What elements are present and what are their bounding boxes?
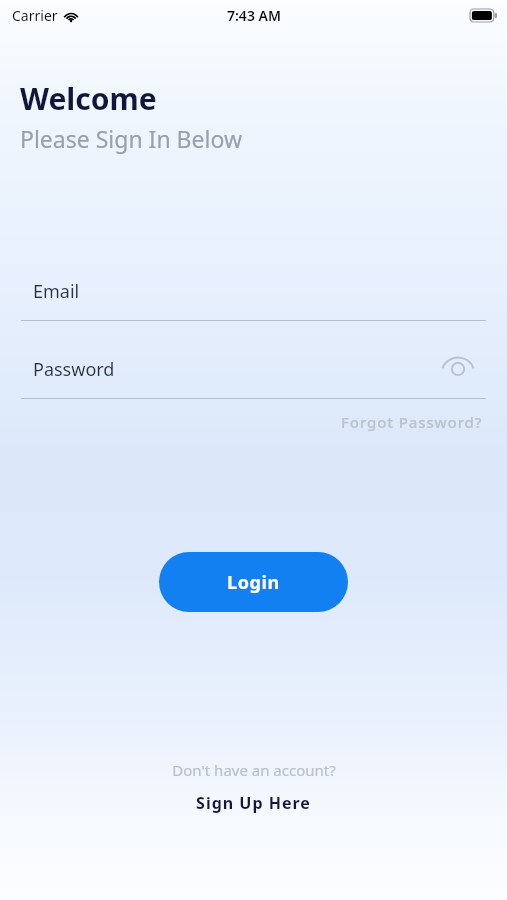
button[interactable]: Show password	[432, 340, 484, 392]
staticText: 7:43 AM	[227, 6, 281, 25]
button[interactable]: Forgot Password?	[339, 408, 485, 436]
button[interactable]: Login	[159, 552, 348, 612]
staticText: Sign Up Here	[196, 792, 311, 814]
button[interactable]: Sign Up Here	[190, 790, 317, 816]
staticText: Email	[33, 279, 80, 304]
staticText: Login	[227, 570, 280, 595]
staticText: Welcome	[20, 78, 157, 119]
staticText: Don't have an account?	[172, 760, 336, 780]
button[interactable]: Password	[0, 340, 507, 398]
staticText: Please Sign In Below	[20, 123, 242, 154]
staticText: Forgot Password?	[341, 412, 483, 432]
staticText: Password	[33, 357, 115, 382]
staticText: Carrier	[12, 6, 58, 25]
button[interactable]: Email	[0, 262, 507, 320]
